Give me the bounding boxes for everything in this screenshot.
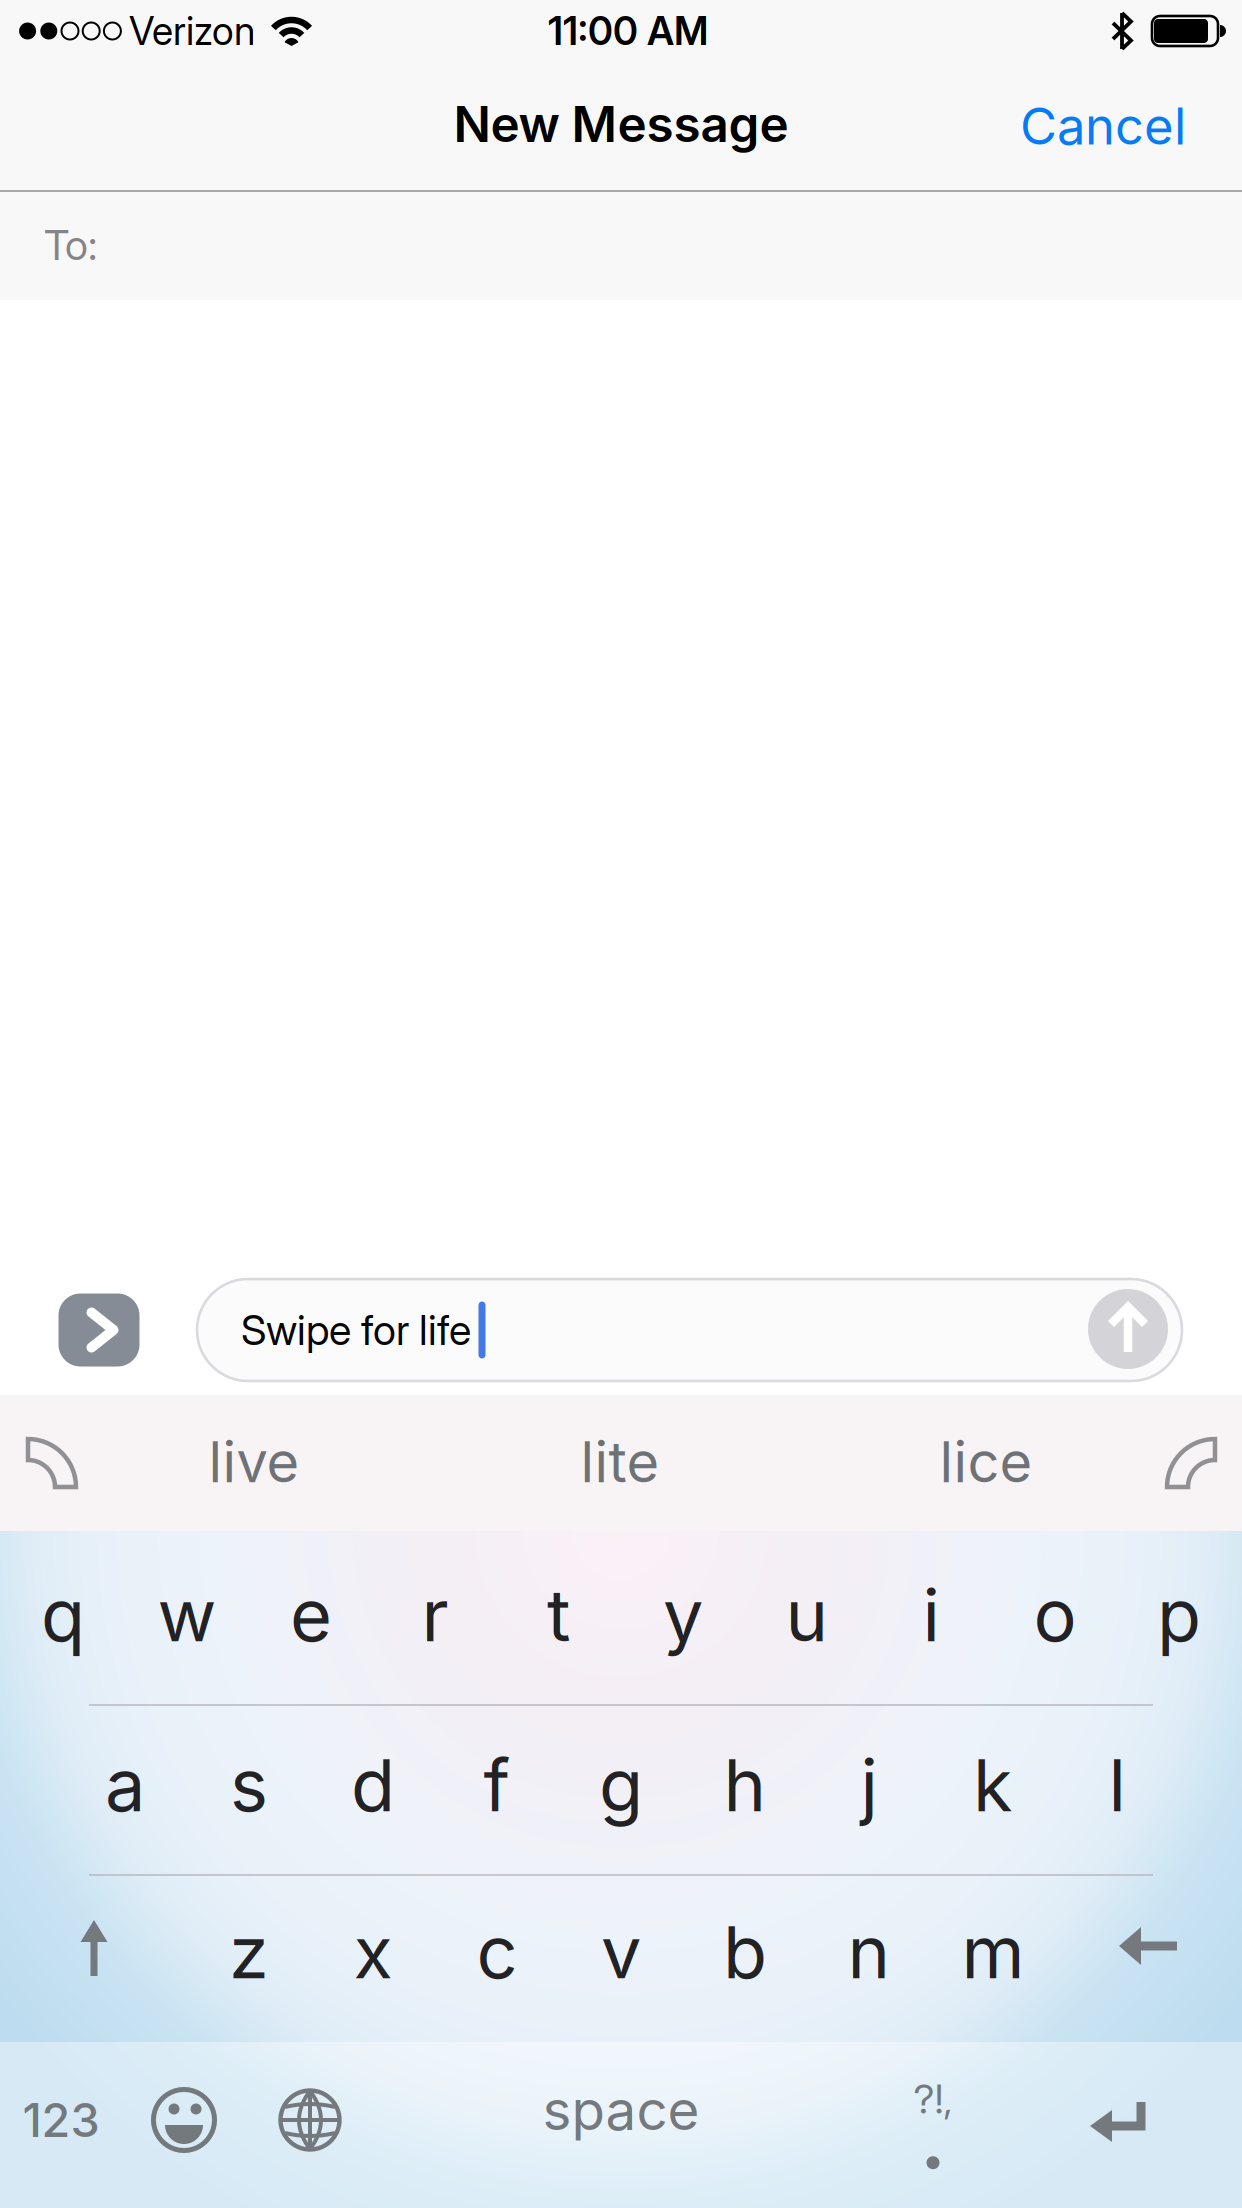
button[interactable]: Return: [1058, 2055, 1178, 2185]
button[interactable]: c: [435, 1878, 559, 2026]
button[interactable]: x: [311, 1878, 435, 2026]
button[interactable]: v: [559, 1878, 683, 2026]
staticText: w: [157, 1571, 216, 1658]
button[interactable]: More apps: [58, 1293, 139, 1366]
staticText: y: [663, 1571, 703, 1658]
button[interactable]: o: [993, 1541, 1117, 1689]
button[interactable]: live: [114, 1402, 394, 1522]
button[interactable]: More suggestions: [1155, 1427, 1225, 1497]
staticText: h: [723, 1741, 766, 1828]
button[interactable]: Send: [1088, 1289, 1168, 1369]
staticText: f: [483, 1741, 510, 1828]
staticText: k: [973, 1741, 1013, 1828]
staticText: lite: [580, 1428, 659, 1496]
staticText: 11:00 AM: [548, 8, 708, 54]
button[interactable]: y: [621, 1541, 745, 1689]
staticText: o: [1033, 1571, 1076, 1658]
staticText: c: [476, 1908, 517, 1995]
button[interactable]: w: [125, 1541, 249, 1689]
button[interactable]: lite: [480, 1402, 760, 1522]
staticText: 123: [22, 2092, 99, 2148]
staticText: To:: [44, 220, 97, 270]
button[interactable]: d: [311, 1711, 435, 1859]
staticText: g: [599, 1741, 643, 1828]
staticText: i: [922, 1571, 939, 1658]
button[interactable]: p: [1117, 1541, 1241, 1689]
button[interactable]: f: [435, 1711, 559, 1859]
button[interactable]: j: [807, 1711, 931, 1859]
staticText: s: [230, 1741, 268, 1828]
staticText: v: [601, 1908, 641, 1995]
button[interactable]: Space: [401, 2045, 841, 2175]
staticText: p: [1157, 1571, 1201, 1658]
button[interactable]: q: [1, 1541, 125, 1689]
button[interactable]: Cancel: [993, 81, 1213, 171]
staticText: j: [860, 1741, 877, 1828]
button[interactable]: n: [807, 1878, 931, 2026]
button[interactable]: m: [931, 1878, 1055, 2026]
button[interactable]: To recipient: [0, 191, 1242, 299]
staticText: x: [353, 1908, 392, 1995]
button[interactable]: a: [63, 1711, 187, 1859]
staticText: lice: [939, 1428, 1032, 1496]
staticText: d: [351, 1741, 395, 1828]
staticText: b: [723, 1908, 767, 1995]
staticText: Cancel: [1020, 95, 1186, 157]
button[interactable]: Delete: [1088, 1883, 1208, 2013]
staticText: m: [961, 1908, 1024, 1995]
button[interactable]: Switch keyboard: [275, 2085, 345, 2155]
button[interactable]: Numbers: [1, 2055, 121, 2185]
button[interactable]: Hide suggestions: [18, 1427, 88, 1497]
staticText: New Message: [453, 94, 788, 154]
button[interactable]: Emoji: [149, 2085, 219, 2155]
staticText: e: [290, 1571, 332, 1658]
staticText: Verizon: [129, 8, 255, 54]
staticText: l: [1108, 1741, 1125, 1828]
button[interactable]: e: [249, 1541, 373, 1689]
button[interactable]: Shift: [34, 1885, 154, 2015]
staticText: u: [785, 1571, 828, 1658]
staticText: live: [208, 1428, 299, 1496]
button[interactable]: z: [187, 1878, 311, 2026]
staticText: ?!,: [913, 2075, 952, 2123]
button[interactable]: s: [187, 1711, 311, 1859]
button[interactable]: k: [931, 1711, 1055, 1859]
staticText: q: [41, 1571, 85, 1658]
button[interactable]: Message: [197, 1279, 1182, 1381]
staticText: Swipe for life: [241, 1305, 471, 1355]
button[interactable]: l: [1055, 1711, 1179, 1859]
staticText: t: [547, 1571, 571, 1658]
button[interactable]: Punctuation: [873, 2057, 993, 2187]
staticText: z: [229, 1908, 269, 1995]
staticText: space: [542, 2077, 699, 2143]
button[interactable]: b: [683, 1878, 807, 2026]
staticText: r: [421, 1571, 448, 1658]
button[interactable]: lice: [846, 1402, 1126, 1522]
button[interactable]: u: [745, 1541, 869, 1689]
staticText: n: [847, 1908, 890, 1995]
button[interactable]: g: [559, 1711, 683, 1859]
button[interactable]: h: [683, 1711, 807, 1859]
staticText: a: [105, 1741, 145, 1828]
button[interactable]: r: [373, 1541, 497, 1689]
button[interactable]: i: [869, 1541, 993, 1689]
button[interactable]: t: [497, 1541, 621, 1689]
